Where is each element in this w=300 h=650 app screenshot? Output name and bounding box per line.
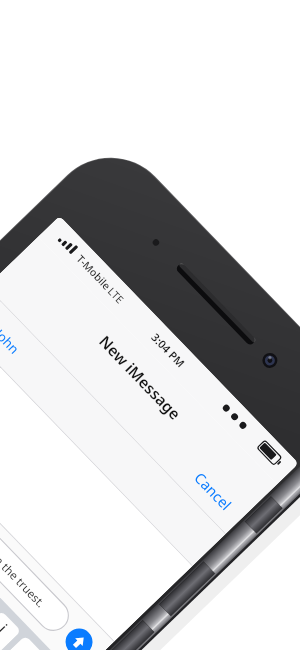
button[interactable]: iPhone showing New iMessage compose scre… [0,0,300,650]
